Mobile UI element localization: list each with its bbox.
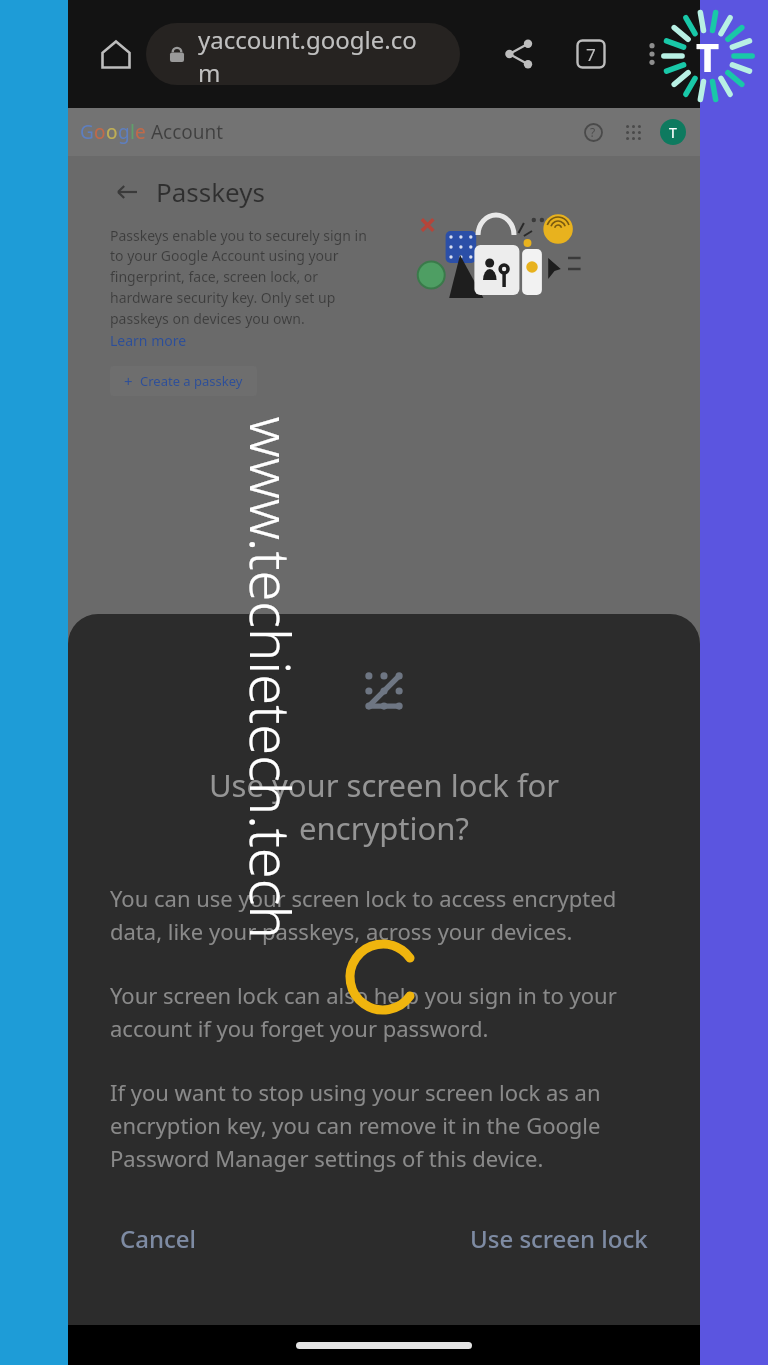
button[interactable]: + (110, 366, 257, 396)
staticText: www.techietech.tech (233, 416, 309, 939)
staticText: Use screen lock (470, 1222, 648, 1255)
staticText: Account (146, 119, 224, 145)
button[interactable]: Use screen lock (454, 1210, 664, 1267)
staticText: o (94, 119, 106, 145)
button[interactable]: Account (660, 119, 686, 145)
staticText: Your screen lock can also help you sign … (110, 980, 658, 1043)
button[interactable]: Tabs (560, 23, 622, 85)
button[interactable]: Home (84, 22, 148, 86)
staticText: T (669, 123, 677, 142)
staticText: g (118, 119, 130, 145)
staticText: + (124, 371, 133, 391)
staticText: G (80, 119, 94, 145)
button[interactable]: Cancel (104, 1210, 213, 1267)
button[interactable]: Google apps (618, 117, 648, 147)
staticText: e (135, 119, 146, 145)
staticText: ? (590, 124, 596, 140)
button[interactable]: More options (624, 26, 680, 82)
staticText: You can use your screen lock to access e… (110, 883, 658, 946)
staticText: o (106, 119, 118, 145)
staticText: Cancel (120, 1222, 197, 1255)
button[interactable]: Learn more (110, 331, 187, 350)
staticText: Passkeys enable you to securely sign in … (110, 226, 376, 329)
staticText: Use your screen lock for encryption? (126, 764, 642, 849)
staticText: Create a passkey (140, 372, 243, 390)
button[interactable]: Share (488, 23, 550, 85)
staticText: Passkeys (156, 174, 265, 209)
button[interactable]: Help (578, 117, 608, 147)
button[interactable]: yaccount.google.com (146, 23, 460, 85)
button[interactable]: Back (110, 175, 144, 209)
staticText: If you want to stop using your screen lo… (110, 1077, 658, 1173)
staticText: yaccount.google.com (198, 23, 438, 85)
staticText: 7 (586, 43, 596, 66)
staticText: l (130, 119, 135, 145)
staticText: T (696, 29, 720, 83)
